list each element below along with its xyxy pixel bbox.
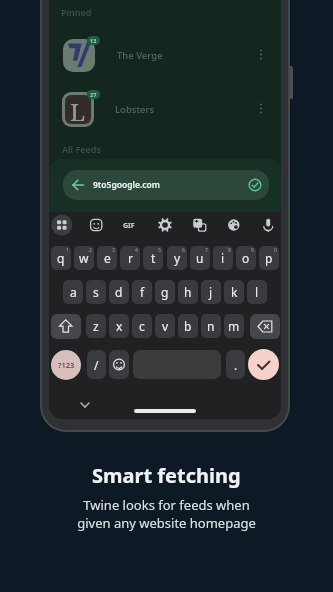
staticText: b — [184, 318, 192, 334]
button[interactable] — [51, 314, 81, 339]
staticText: Pinned — [61, 6, 92, 18]
staticText: L — [70, 95, 86, 124]
button[interactable]: l — [247, 280, 267, 304]
staticText: z — [93, 318, 99, 334]
button[interactable] — [202, 213, 226, 237]
button[interactable]: p — [259, 246, 279, 270]
staticText: d — [115, 284, 123, 300]
button[interactable] — [133, 350, 221, 379]
button[interactable]: j — [201, 280, 221, 304]
button[interactable]: v — [155, 314, 175, 338]
button[interactable] — [236, 213, 260, 237]
staticText: l — [255, 284, 259, 300]
button[interactable]: m — [224, 314, 244, 338]
button[interactable]: 9to5google.com — [63, 170, 269, 200]
staticText: 13 — [90, 37, 97, 44]
staticText: Twine looks for feeds when given any web… — [77, 496, 256, 532]
button[interactable] — [255, 102, 267, 118]
staticText: Lobsters — [115, 103, 155, 116]
button[interactable]: 13 — [49, 35, 281, 77]
staticText: o — [242, 250, 250, 266]
staticText: 2 — [89, 247, 92, 254]
staticText: The Verge — [117, 49, 163, 62]
button[interactable] — [133, 213, 157, 237]
button[interactable]: h — [178, 280, 198, 304]
button[interactable]: a — [63, 280, 83, 304]
staticText: g — [161, 284, 169, 300]
button[interactable]: e — [97, 246, 117, 270]
staticText: GIF — [123, 221, 135, 231]
button[interactable] — [255, 48, 267, 64]
button[interactable]: t — [143, 246, 163, 270]
staticText: 5 — [158, 247, 161, 254]
staticText: a — [70, 284, 77, 300]
button[interactable]: y — [167, 246, 187, 270]
button[interactable]: c — [132, 314, 152, 338]
staticText: 0 — [274, 247, 277, 254]
button[interactable]: g — [155, 280, 175, 304]
staticText: c — [139, 318, 145, 334]
button[interactable]: w — [74, 246, 94, 270]
staticText: e — [104, 250, 111, 266]
staticText: n — [207, 318, 215, 334]
staticText: r — [128, 250, 133, 266]
staticText: q — [57, 250, 65, 266]
staticText: x — [116, 318, 123, 334]
button[interactable]: n — [201, 314, 221, 338]
button[interactable]: q — [51, 246, 71, 270]
button[interactable]: i — [213, 246, 233, 270]
staticText: ?123 — [58, 360, 75, 370]
staticText: s — [93, 284, 99, 300]
staticText: v — [162, 318, 169, 334]
staticText: w — [79, 250, 89, 266]
staticText: 9 — [251, 247, 254, 254]
button[interactable]: d — [109, 280, 129, 304]
button[interactable]: / — [87, 350, 106, 379]
staticText: 1 — [66, 247, 69, 254]
button[interactable] — [248, 349, 279, 380]
staticText: m — [228, 318, 240, 334]
staticText: All Feeds — [62, 143, 101, 155]
staticText: Smart fetching — [92, 462, 241, 489]
staticText: h — [184, 284, 192, 300]
button[interactable]: x — [109, 314, 129, 338]
button[interactable]: ?123 — [51, 350, 81, 380]
button[interactable]: u — [190, 246, 210, 270]
staticText: 9to5google.com — [93, 179, 160, 191]
button[interactable] — [271, 213, 281, 237]
button[interactable]: o — [236, 246, 256, 270]
button[interactable] — [77, 396, 93, 412]
staticText: 8 — [228, 247, 231, 254]
staticText: 4 — [135, 247, 138, 254]
button[interactable]: r — [120, 246, 140, 270]
button[interactable]: L — [49, 88, 281, 132]
button[interactable]: f — [132, 280, 152, 304]
button[interactable]: z — [86, 314, 106, 338]
staticText: f — [140, 284, 145, 300]
staticText: 6 — [182, 247, 185, 254]
staticText: / — [94, 357, 99, 373]
staticText: 3 — [112, 247, 115, 254]
staticText: y — [174, 250, 181, 266]
button[interactable]: . — [226, 350, 245, 379]
staticText: t — [151, 250, 156, 266]
staticText: u — [196, 250, 204, 266]
staticText: 27 — [90, 91, 97, 98]
button[interactable] — [168, 213, 192, 237]
button[interactable] — [109, 350, 129, 379]
button[interactable]: k — [224, 280, 244, 304]
button[interactable]: b — [178, 314, 198, 338]
button[interactable] — [99, 213, 123, 237]
button[interactable] — [250, 314, 280, 339]
staticText: k — [231, 284, 238, 300]
staticText: i — [221, 250, 225, 266]
staticText: p — [265, 250, 273, 266]
staticText: . — [234, 357, 238, 373]
staticText: 7 — [205, 247, 208, 254]
button[interactable]: s — [86, 280, 106, 304]
staticText: j — [209, 284, 213, 300]
